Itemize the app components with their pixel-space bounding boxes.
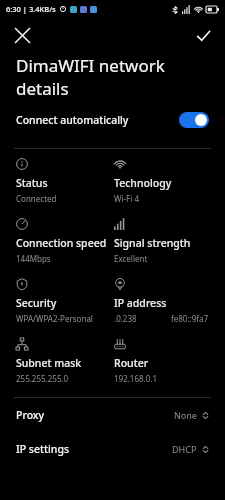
staticText: Security xyxy=(16,296,57,310)
staticText: IP settings xyxy=(16,442,172,456)
staticText: Wi-Fi 4 xyxy=(114,193,139,204)
staticText: None xyxy=(174,409,197,421)
staticText: WPA/WPA2-Personal xyxy=(16,313,93,324)
staticText: Subnet mask xyxy=(16,356,82,370)
button[interactable]: IP settings xyxy=(0,432,225,466)
button[interactable]: Close xyxy=(8,21,36,49)
button[interactable]: Connect automatically xyxy=(0,100,225,140)
staticText: Technology xyxy=(114,176,172,190)
staticText: .0.238 xyxy=(114,313,137,324)
staticText: IP address xyxy=(114,296,167,310)
staticText: 6:30 | 3.4KB/s xyxy=(6,4,56,14)
staticText: DHCP xyxy=(172,443,197,455)
staticText: fe80::9fa7 xyxy=(171,313,209,324)
button[interactable]: Save xyxy=(189,21,217,49)
staticText: Proxy xyxy=(16,408,174,422)
staticText: 192.168.0.1 xyxy=(114,373,158,384)
staticText: Connected xyxy=(16,193,57,204)
staticText: Router xyxy=(114,356,149,370)
button[interactable]: Proxy xyxy=(0,398,225,432)
staticText: 144Mbps xyxy=(16,253,51,264)
staticText: 255.255.255.0 xyxy=(16,373,69,384)
staticText: Connection speed xyxy=(16,236,107,250)
staticText: Signal strength xyxy=(114,236,191,250)
staticText: DimaWIFI network details xyxy=(16,54,165,100)
staticText: Status xyxy=(16,176,48,190)
staticText: Connect automatically xyxy=(16,113,179,127)
staticText: Excellent xyxy=(114,253,148,264)
